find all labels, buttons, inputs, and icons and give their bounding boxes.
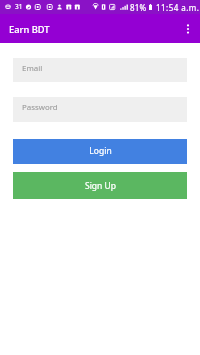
staticText: 81% [130,2,147,13]
button[interactable]: Password [13,97,187,122]
staticText: 31 [15,2,23,11]
staticText: Login [89,145,112,157]
staticText: Sign Up [85,180,116,192]
staticText: Email [22,63,43,74]
staticText: Password [22,102,58,113]
button[interactable]: Sign Up [13,172,187,199]
button[interactable]: More options [176,17,200,41]
staticText: 11:54 a.m. [156,2,200,13]
button[interactable]: Login [13,139,187,164]
staticText: Earn BDT [9,23,50,36]
button[interactable]: Email [13,58,187,82]
